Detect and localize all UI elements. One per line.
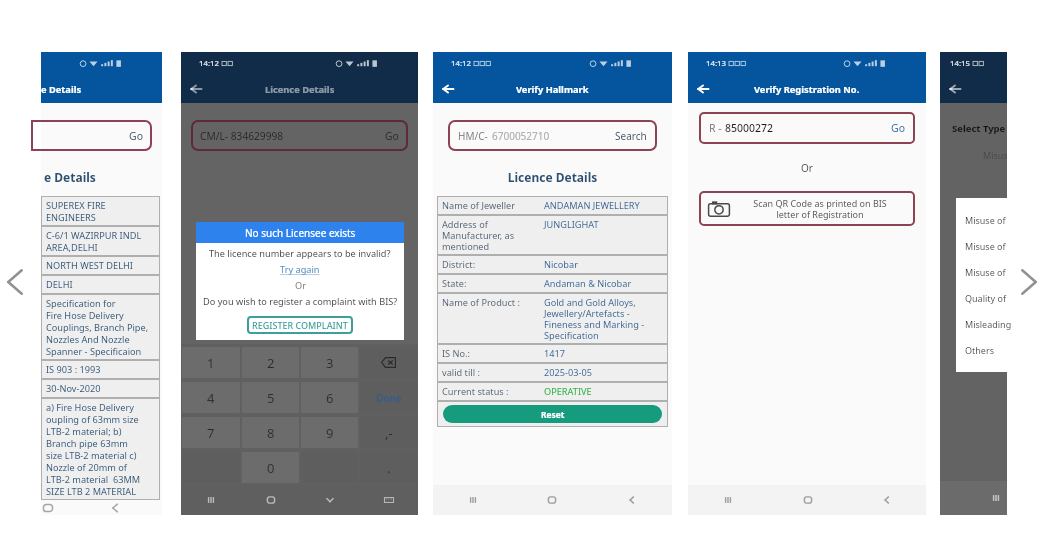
button[interactable]: Home [42,502,54,514]
button[interactable]: Back [109,502,121,514]
button[interactable]: 9 [301,417,358,448]
staticText: Select Type [952,122,1006,135]
staticText: JUNGLIGHAT [544,218,599,231]
staticText: Name of Jeweller [442,199,516,212]
staticText: Misleading [965,318,1012,330]
staticText: 1417 [544,347,566,360]
staticText: 2 [267,354,275,372]
staticText: Misuse of [965,214,1006,226]
staticText: State: [442,277,467,290]
button[interactable]: kbd [359,485,418,515]
button[interactable]: Quality of [956,285,1023,311]
staticText: 14:15 [950,58,970,69]
staticText: Or [295,279,306,292]
button[interactable]: Previous screenshot [3,268,27,296]
staticText: Done [376,391,402,405]
button[interactable]: Back [190,83,202,95]
button[interactable]: Done [360,382,417,413]
button[interactable]: home [512,485,592,515]
button[interactable]: back [592,485,672,515]
button[interactable]: Misleading [956,311,1023,337]
staticText: ,- [385,424,393,442]
staticText: REGISTER COMPLAINT [252,319,348,331]
staticText: 14:12 [199,58,219,69]
button[interactable]: Recents [990,492,1002,504]
button[interactable]: Back [442,83,454,95]
button[interactable] [360,347,417,378]
staticText: Go [129,129,143,143]
staticText: 1 [207,354,215,372]
staticText: Reset [541,409,565,420]
staticText: 0 [267,459,275,477]
staticText: Or [688,161,926,175]
staticText: . [387,459,391,477]
staticText: 3 [326,354,334,372]
staticText: 6 [326,389,334,407]
button[interactable]: Misuse of [956,233,1023,259]
staticText: e Details [44,169,96,185]
staticText: District: [442,258,476,271]
button[interactable]: CM/L- 834629998 [191,120,408,151]
button[interactable]: R - [699,112,915,144]
button[interactable]: recents [181,485,241,515]
staticText: 5 [267,389,275,407]
staticText: Search [615,129,647,143]
staticText: 14:13 [706,58,726,69]
staticText: Nicobar [544,258,578,271]
staticText: IS 903 : 1993 [46,363,101,376]
button[interactable]: Back [949,83,961,95]
button[interactable]: back [847,485,926,515]
staticText: a) Fire Hose Delivery oupling of 63mm si… [46,401,141,497]
staticText: IS No.: [442,347,471,360]
staticText: Address of Manufacturer, as mentioned [442,218,515,252]
staticText: SUPEREX FIRE ENGINEERS [46,199,106,223]
button[interactable]: Scan QR Code as printed on BIS letter of… [699,191,915,226]
button[interactable]: 3 [301,347,358,378]
button[interactable]: Back [697,83,709,95]
button[interactable]: 1 [182,347,240,378]
staticText: 9 [326,424,334,442]
staticText: Licence Details [433,169,672,185]
staticText: 14:12 [451,58,471,69]
staticText: 8 [267,424,275,442]
button[interactable]: home [768,485,847,515]
staticText: Name of Product : [442,296,521,309]
button[interactable]: 5 [242,382,299,413]
button[interactable]: recents [688,485,768,515]
staticText: Gold and Gold Alloys, Jewellery/Artefact… [544,296,645,341]
staticText: e Details [41,83,82,96]
staticText: Licence Details [265,83,335,96]
staticText: Go [385,129,399,143]
button[interactable]: Misuse of [956,207,1023,233]
staticText: 7 [207,424,215,442]
staticText: R - [709,121,725,135]
button[interactable]: Reset [443,405,662,423]
staticText: Misus [983,149,1007,161]
button[interactable]: Next screenshot [1017,268,1041,296]
button[interactable]: Go [31,120,152,151]
button[interactable]: 6 [301,382,358,413]
button[interactable]: home [241,485,300,515]
button[interactable]: 8 [242,417,299,448]
button[interactable]: 4 [182,382,240,413]
staticText: Misuse of [965,266,1006,278]
button[interactable]: 7 [182,417,240,448]
button[interactable]: Others [956,337,1023,363]
staticText: 2025-03-05 [544,366,592,379]
button[interactable]: REGISTER COMPLAINT [247,316,353,334]
button[interactable]: 2 [242,347,299,378]
button[interactable]: down [300,485,359,515]
button[interactable]: 0 [242,452,299,483]
button[interactable]: Try again [280,263,320,276]
staticText: OPERATIVE [544,385,592,398]
button[interactable]: Misuse of [956,259,1023,285]
staticText: Verify Registration No. [754,83,860,96]
staticText: Current status : [442,385,509,398]
button[interactable]: HM/C- [448,120,657,151]
staticText: No such Licensee exists [245,226,356,240]
button[interactable]: recents [433,485,512,515]
